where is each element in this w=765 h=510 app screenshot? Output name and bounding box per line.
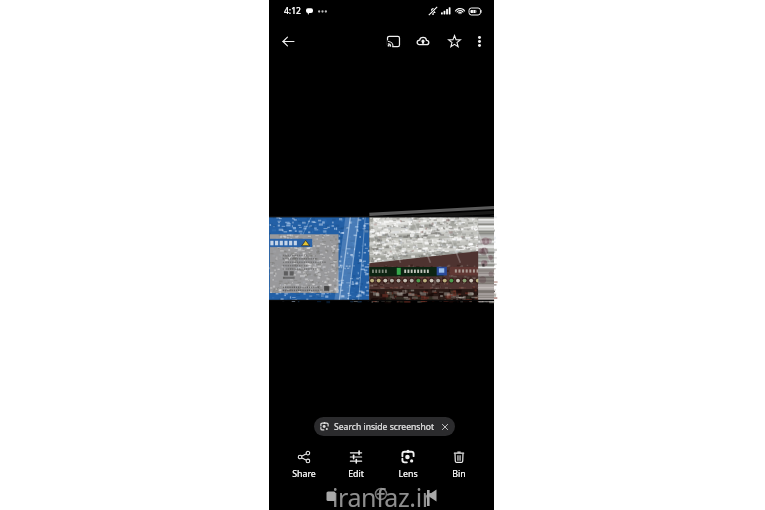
button[interactable]: Search inside screenshot xyxy=(314,417,455,436)
staticText: iranfaz.ir xyxy=(332,480,432,510)
staticText: Lens xyxy=(398,468,418,479)
button[interactable]: Share xyxy=(280,445,328,479)
button[interactable]: Back up xyxy=(410,28,436,54)
button[interactable]: Lens xyxy=(384,445,432,479)
button[interactable]: Back xyxy=(275,28,301,54)
button[interactable]: Cast xyxy=(380,28,406,54)
staticText: Edit xyxy=(348,468,364,479)
button[interactable]: More options xyxy=(467,29,491,53)
button[interactable]: Favourite xyxy=(441,28,467,54)
button[interactable]: Edit xyxy=(332,445,380,479)
button[interactable]: Dismiss xyxy=(439,417,450,436)
button[interactable]: Bin xyxy=(435,445,483,479)
staticText: Bin xyxy=(452,468,466,479)
staticText: Search inside screenshot xyxy=(334,421,435,433)
staticText: 4:12 xyxy=(284,5,301,17)
staticText: Share xyxy=(292,468,316,479)
